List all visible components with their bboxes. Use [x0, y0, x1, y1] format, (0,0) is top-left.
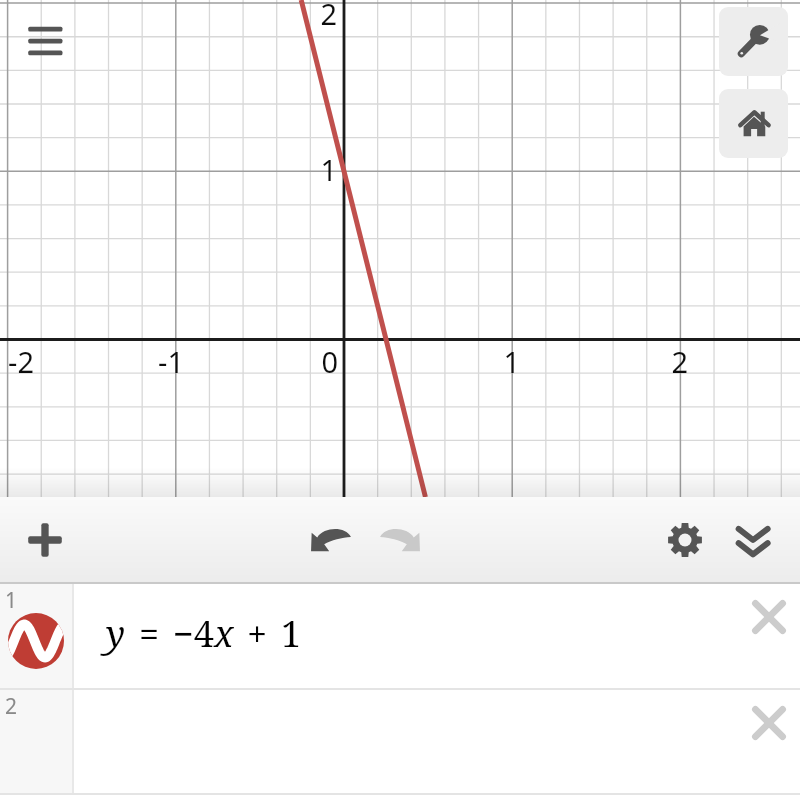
button[interactable]: Menu [20, 17, 70, 67]
staticText: -1 [124, 342, 184, 381]
staticText: y [106, 609, 126, 658]
button[interactable]: Home [719, 89, 788, 158]
staticText: 1 [281, 609, 302, 658]
staticText: x [214, 609, 234, 658]
button[interactable]: Undo [303, 512, 359, 568]
button[interactable]: Delete expression [743, 591, 795, 643]
button[interactable]: Collapse keypad [725, 512, 781, 568]
staticText: 1 [277, 150, 337, 189]
button[interactable]: Add expression [17, 512, 73, 568]
staticText: 2 [5, 692, 18, 721]
button[interactable]: 2 [0, 690, 800, 793]
staticText: 1 [5, 586, 18, 615]
staticText: 1 [460, 342, 520, 381]
button[interactable]: Delete expression [743, 697, 795, 749]
staticText: + [247, 609, 268, 658]
button[interactable]: 1 [0, 584, 800, 688]
staticText: 2 [628, 342, 688, 381]
staticText: −4 [173, 609, 214, 658]
staticText: 2 [277, 0, 337, 33]
staticText: -2 [0, 342, 34, 381]
staticText: = [139, 609, 160, 658]
staticText: 0 [278, 342, 338, 381]
button[interactable]: Graph settings [657, 512, 713, 568]
button[interactable]: Settings [719, 7, 788, 76]
button[interactable]: Redo [372, 512, 428, 568]
